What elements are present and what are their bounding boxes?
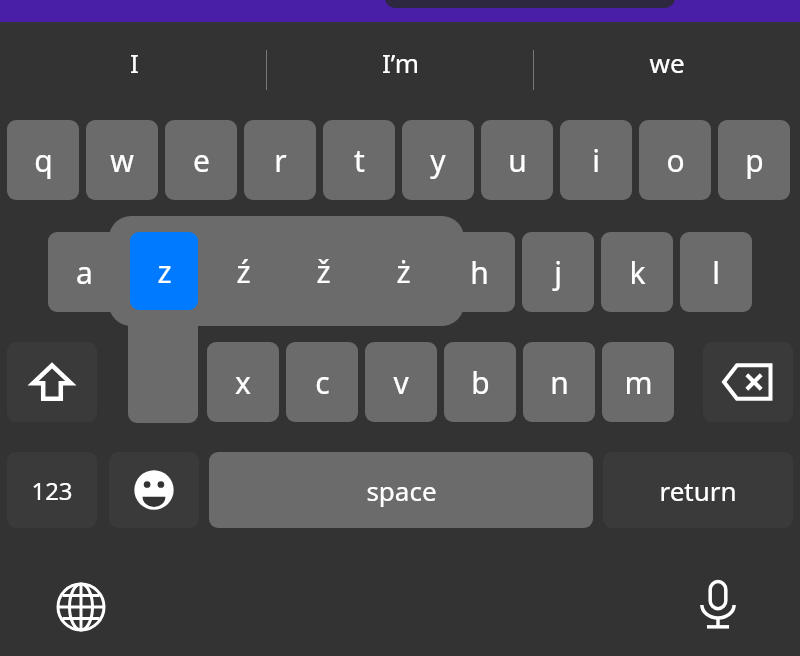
staticText: ź xyxy=(236,251,251,292)
button[interactable]: p xyxy=(718,120,790,200)
button[interactable]: s xyxy=(127,232,199,312)
button[interactable]: l xyxy=(680,232,752,312)
button[interactable]: I’m xyxy=(280,34,520,90)
staticText: z xyxy=(157,251,172,292)
button[interactable]: n xyxy=(523,342,595,422)
staticText: q xyxy=(34,140,53,181)
button[interactable]: Shift xyxy=(7,342,97,422)
staticText: i xyxy=(592,140,600,181)
staticText: v xyxy=(393,362,409,403)
staticText: ż xyxy=(396,251,411,292)
button[interactable]: return xyxy=(603,452,793,528)
staticText: k xyxy=(629,252,646,293)
button[interactable]: e xyxy=(165,120,237,200)
staticText: a xyxy=(76,252,93,293)
button[interactable]: q xyxy=(7,120,79,200)
button[interactable]: b xyxy=(444,342,516,422)
staticText: j xyxy=(554,252,562,293)
button[interactable]: h xyxy=(443,232,515,312)
staticText: 123 xyxy=(31,474,73,507)
staticText: space xyxy=(366,473,437,508)
button[interactable]: I xyxy=(14,34,254,90)
staticText: t xyxy=(354,140,365,181)
staticText: n xyxy=(550,362,569,403)
staticText: l xyxy=(712,252,720,293)
button[interactable]: space xyxy=(209,452,593,528)
staticText: w xyxy=(110,140,134,181)
staticText: y xyxy=(430,140,446,181)
staticText: ž xyxy=(316,251,331,292)
button[interactable]: z xyxy=(130,232,198,310)
staticText: f xyxy=(316,252,327,293)
staticText: x xyxy=(235,362,251,403)
staticText: I’m xyxy=(382,45,419,80)
staticText: m xyxy=(624,362,653,403)
button[interactable]: t xyxy=(323,120,395,200)
button[interactable]: r xyxy=(244,120,316,200)
button[interactable]: y xyxy=(402,120,474,200)
staticText: h xyxy=(470,252,489,293)
button[interactable]: d xyxy=(206,232,278,312)
staticText: g xyxy=(391,252,410,293)
button[interactable]: g xyxy=(364,232,436,312)
button[interactable]: a xyxy=(48,232,120,312)
button[interactable]: ž xyxy=(289,232,357,310)
button[interactable]: m xyxy=(602,342,674,422)
staticText: return xyxy=(659,473,737,508)
button[interactable]: x xyxy=(207,342,279,422)
staticText: r xyxy=(274,140,287,181)
staticText: o xyxy=(666,140,685,181)
button[interactable]: k xyxy=(601,232,673,312)
button[interactable]: j xyxy=(522,232,594,312)
button[interactable]: Emoji xyxy=(109,452,199,528)
button[interactable]: 123 xyxy=(7,452,97,528)
staticText: we xyxy=(649,45,685,80)
button[interactable]: u xyxy=(481,120,553,200)
button[interactable]: ź xyxy=(209,232,277,310)
staticText: e xyxy=(193,140,210,181)
button[interactable]: Backspace xyxy=(703,342,793,422)
button[interactable]: v xyxy=(365,342,437,422)
staticText: d xyxy=(233,252,252,293)
button[interactable]: Change keyboard xyxy=(46,572,116,642)
staticText: p xyxy=(745,140,764,181)
staticText: I xyxy=(130,45,139,80)
button[interactable]: c xyxy=(286,342,358,422)
button[interactable]: Voice input xyxy=(683,570,753,640)
button[interactable] xyxy=(385,0,675,8)
button[interactable]: f xyxy=(285,232,357,312)
staticText: b xyxy=(471,362,490,403)
button[interactable]: w xyxy=(86,120,158,200)
staticText: c xyxy=(315,362,330,403)
staticText: s xyxy=(156,252,171,293)
button[interactable]: we xyxy=(547,34,787,90)
button[interactable]: i xyxy=(560,120,632,200)
button[interactable]: ż xyxy=(369,232,437,310)
staticText: u xyxy=(508,140,527,181)
button[interactable]: o xyxy=(639,120,711,200)
